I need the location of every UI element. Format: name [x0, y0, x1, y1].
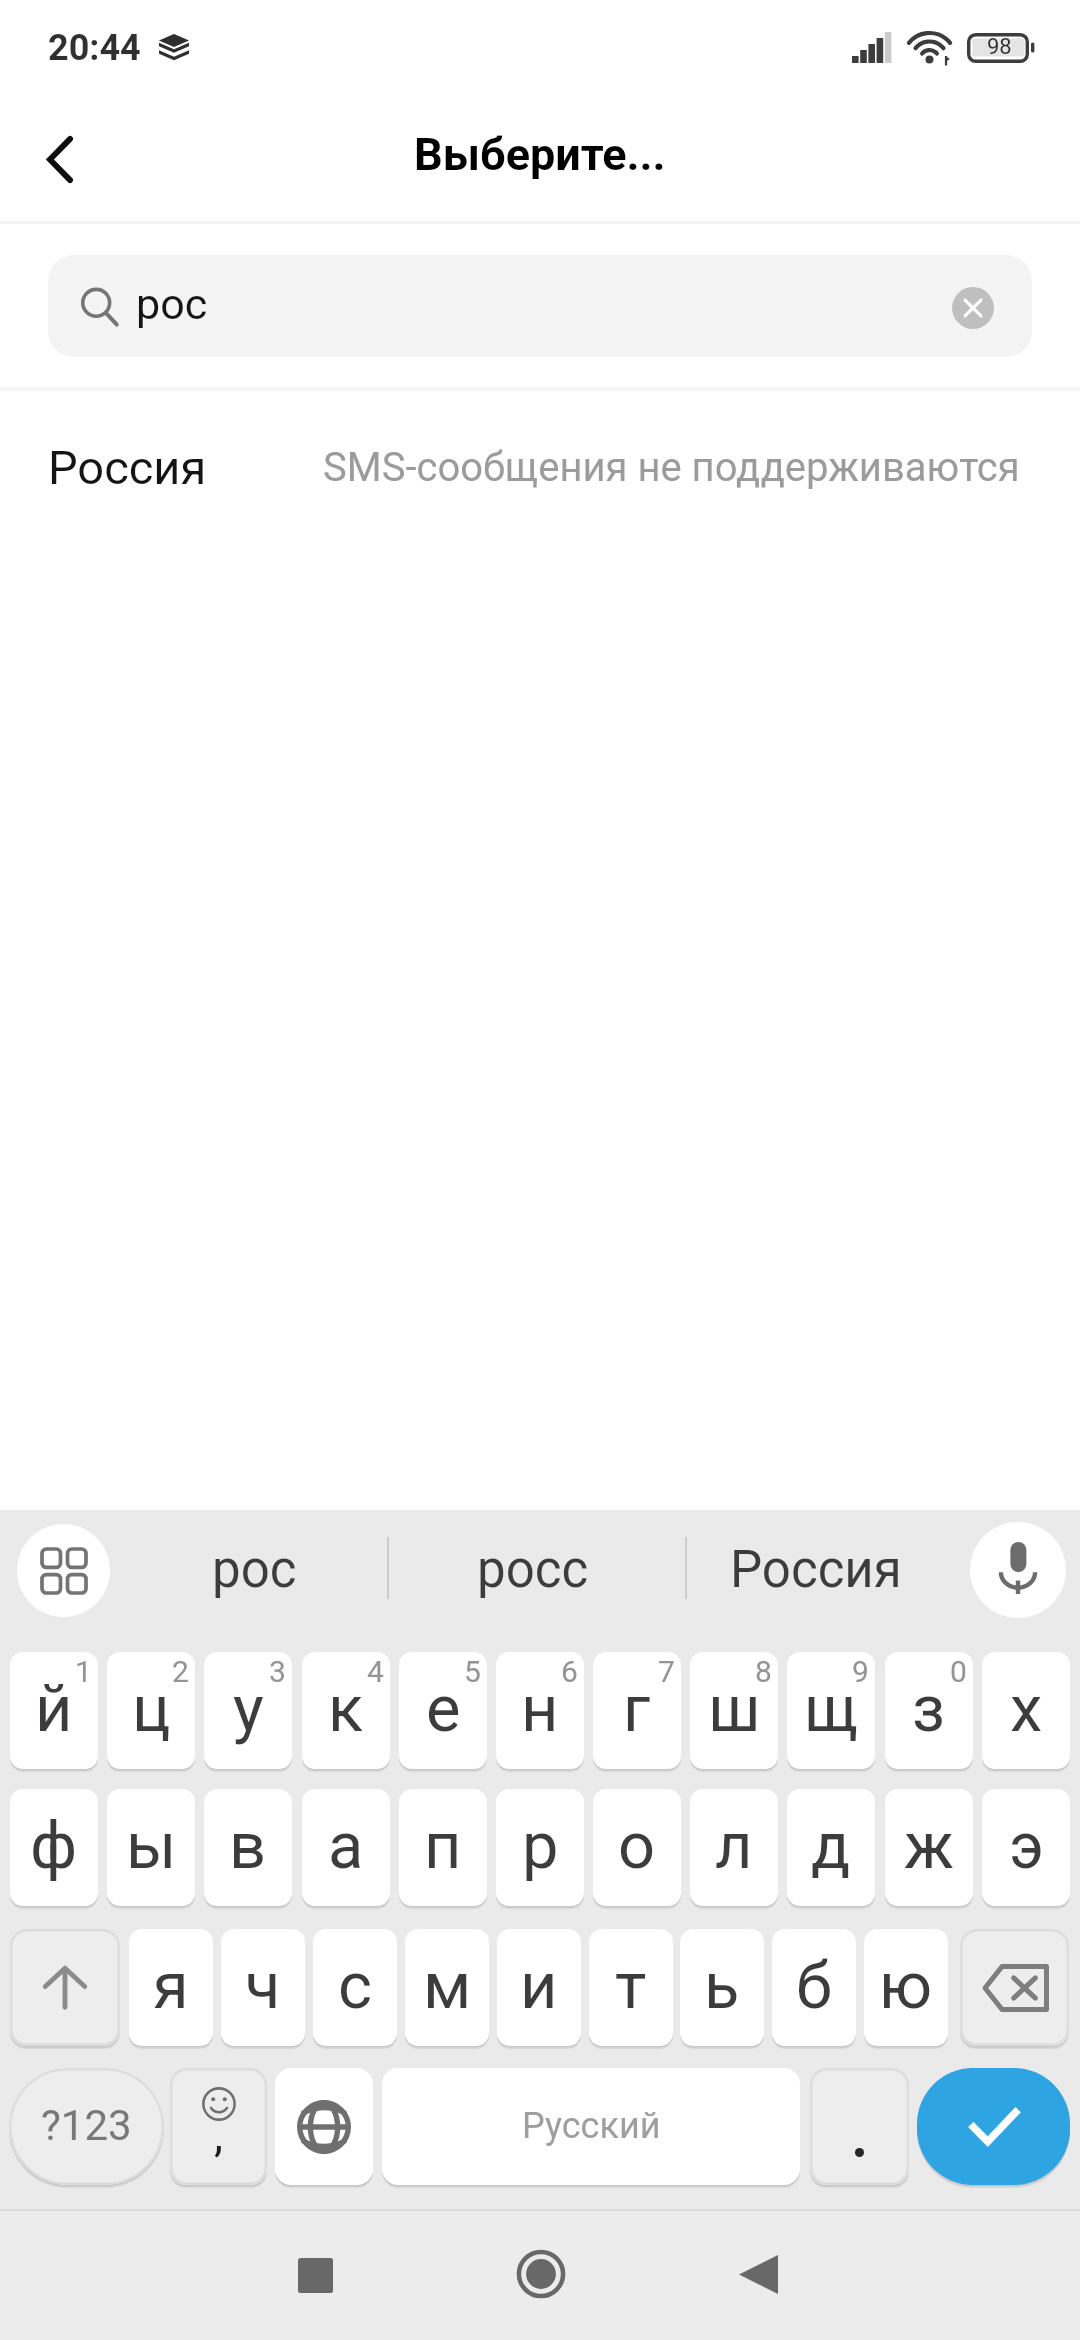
staticText: 2 — [172, 1654, 189, 1689]
button[interactable]: л — [690, 1789, 778, 1906]
button[interactable]: Keyboard menu — [17, 1524, 110, 1617]
staticText: с — [338, 1948, 373, 2024]
button[interactable]: Back — [18, 112, 106, 200]
button[interactable]: Back — [686, 2232, 831, 2316]
staticText: ы — [126, 1808, 177, 1884]
button[interactable]: щ — [787, 1652, 875, 1769]
staticText: Россия — [48, 440, 207, 495]
staticText: , — [214, 2108, 224, 2162]
button[interactable]: м — [405, 1929, 489, 2046]
button[interactable]: к — [302, 1652, 390, 1769]
staticText: х — [1010, 1671, 1043, 1747]
button[interactable]: х — [982, 1652, 1070, 1769]
button[interactable]: Русский — [382, 2068, 800, 2185]
button[interactable]: Symbols — [9, 2068, 164, 2185]
button[interactable]: у — [204, 1652, 292, 1769]
button[interactable]: ю — [864, 1929, 948, 2046]
staticText: Русский — [522, 2105, 661, 2147]
staticText: р — [522, 1808, 559, 1884]
staticText: Россия — [730, 1540, 902, 1600]
button[interactable]: ь — [680, 1929, 764, 2046]
staticText: ш — [708, 1671, 761, 1747]
staticText: 8 — [755, 1654, 772, 1689]
button[interactable]: Home — [468, 2228, 613, 2320]
staticText: ч — [245, 1948, 281, 2024]
button[interactable]: т — [589, 1929, 673, 2046]
staticText: ь — [704, 1948, 740, 2024]
button[interactable]: ш — [690, 1652, 778, 1769]
button[interactable]: н — [496, 1652, 584, 1769]
button[interactable]: рос — [48, 255, 1032, 357]
staticText: щ — [804, 1671, 858, 1747]
button[interactable]: Clear — [948, 281, 998, 331]
button[interactable]: Period — [810, 2068, 909, 2185]
staticText: 3 — [269, 1654, 286, 1689]
staticText: ю — [879, 1948, 933, 2024]
staticText: й — [35, 1671, 73, 1747]
staticText: 20:44 — [48, 27, 141, 69]
button[interactable]: ц — [107, 1652, 195, 1769]
button[interactable]: э — [982, 1789, 1070, 1906]
button[interactable]: в — [204, 1789, 292, 1906]
button[interactable]: а — [302, 1789, 390, 1906]
button[interactable]: Voice input — [970, 1522, 1066, 1618]
button[interactable]: и — [497, 1929, 581, 2046]
staticText: 6 — [561, 1654, 578, 1689]
staticText: я — [153, 1948, 189, 2024]
staticText: 4 — [367, 1654, 384, 1689]
button[interactable]: г — [593, 1652, 681, 1769]
staticText: к — [328, 1671, 364, 1747]
staticText: в — [229, 1808, 267, 1884]
staticText: у — [233, 1671, 264, 1747]
button[interactable]: б — [772, 1929, 856, 2046]
button[interactable]: ч — [221, 1929, 305, 2046]
button[interactable]: Emoji — [170, 2068, 267, 2185]
button[interactable]: Россия — [685, 1518, 947, 1622]
staticText: 98 — [987, 34, 1012, 60]
staticText: п — [424, 1808, 462, 1884]
button[interactable]: Backspace — [960, 1929, 1069, 2046]
button[interactable]: д — [787, 1789, 875, 1906]
button[interactable]: рос — [125, 1518, 383, 1622]
staticText: 7 — [658, 1654, 675, 1689]
staticText: ф — [30, 1808, 78, 1884]
staticText: Выберите... — [414, 128, 666, 181]
staticText: и — [520, 1948, 558, 2024]
button[interactable]: Recents — [243, 2235, 388, 2315]
button[interactable]: я — [129, 1929, 213, 2046]
staticText: 5 — [464, 1654, 481, 1689]
staticText: о — [618, 1808, 656, 1884]
button[interactable]: е — [399, 1652, 487, 1769]
staticText: росс — [477, 1540, 589, 1600]
button[interactable]: Enter — [917, 2068, 1070, 2185]
staticText: н — [521, 1671, 559, 1747]
button[interactable]: с — [313, 1929, 397, 2046]
button[interactable]: ф — [10, 1789, 98, 1906]
staticText: 0 — [950, 1654, 967, 1689]
staticText: т — [615, 1948, 647, 2024]
staticText: SMS-сообщения не поддерживаются — [323, 444, 1020, 491]
staticText: 1 — [75, 1654, 92, 1689]
staticText: б — [796, 1948, 832, 2024]
staticText: е — [426, 1671, 461, 1747]
staticText: д — [811, 1808, 851, 1884]
button[interactable]: з — [885, 1652, 973, 1769]
button[interactable]: ж — [885, 1789, 973, 1906]
staticText: рос — [212, 1540, 297, 1600]
button[interactable]: й — [10, 1652, 98, 1769]
button[interactable]: Россия — [0, 397, 1080, 537]
staticText: ж — [904, 1808, 954, 1884]
button[interactable]: р — [496, 1789, 584, 1906]
button[interactable]: Shift — [10, 1929, 120, 2046]
button[interactable]: Change language — [275, 2068, 373, 2185]
staticText: м — [423, 1948, 472, 2024]
staticText: 9 — [852, 1654, 869, 1689]
staticText: рос — [136, 279, 208, 329]
staticText: л — [715, 1808, 753, 1884]
button[interactable]: росс — [385, 1518, 681, 1622]
staticText: ц — [132, 1671, 171, 1747]
button[interactable]: п — [399, 1789, 487, 1906]
button[interactable]: ы — [107, 1789, 195, 1906]
button[interactable]: о — [593, 1789, 681, 1906]
staticText: з — [912, 1671, 946, 1747]
